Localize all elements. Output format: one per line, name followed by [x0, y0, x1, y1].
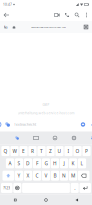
button[interactable]: GIF	[30, 133, 41, 143]
staticText: T	[40, 148, 43, 154]
staticText: S	[17, 160, 20, 167]
button[interactable]: G	[42, 158, 50, 168]
button[interactable]: Recent apps	[7, 194, 23, 205]
staticText: Aa	[3, 24, 7, 30]
button[interactable]: H	[51, 158, 59, 168]
button[interactable]: E	[19, 146, 28, 156]
button[interactable]: U	[55, 146, 64, 156]
button[interactable]: Switch language	[13, 183, 21, 193]
button[interactable]: N	[60, 171, 68, 181]
staticText: D	[26, 160, 30, 167]
button[interactable]: R	[28, 146, 37, 156]
button[interactable]: A	[6, 158, 14, 168]
button[interactable]: Z	[46, 146, 55, 156]
staticText: C	[35, 172, 38, 179]
staticText: 10:47	[3, 2, 12, 7]
button[interactable]: D	[24, 158, 32, 168]
button[interactable]: Home	[38, 194, 54, 205]
staticText: N	[62, 172, 66, 179]
staticText: X	[26, 172, 29, 179]
button[interactable]: Stickers	[11, 133, 22, 143]
button[interactable]: Secure connection	[11, 21, 17, 33]
staticText: Textnachricht	[14, 122, 36, 127]
staticText: M	[71, 172, 75, 179]
staticText: H	[53, 160, 57, 167]
button[interactable]: Add attachment	[0, 118, 3, 131]
staticText: unterhaltung.web-service-host.com	[17, 111, 74, 115]
button[interactable]: B	[51, 171, 59, 181]
button[interactable]: V	[42, 171, 50, 181]
staticText: V	[44, 172, 47, 179]
staticText: B	[53, 172, 56, 179]
button[interactable]: X	[24, 171, 32, 181]
button[interactable]: C	[33, 171, 41, 181]
staticText: Y	[17, 172, 20, 179]
staticText: Q	[3, 148, 7, 154]
button[interactable]: Y	[15, 171, 23, 181]
staticText: E	[22, 148, 25, 154]
button[interactable]: J	[60, 158, 68, 168]
button[interactable]: More options	[82, 9, 91, 21]
button[interactable]: P	[82, 146, 91, 156]
staticText: U	[57, 148, 61, 154]
staticText: G	[44, 160, 47, 167]
staticText: K	[71, 160, 74, 167]
staticText: unterhaltung.web-service-host.com	[31, 25, 66, 29]
button[interactable]: Tabs	[80, 21, 92, 33]
button[interactable]: Call	[62, 9, 72, 21]
button[interactable]: Camera	[78, 118, 88, 131]
staticText: Z	[49, 148, 52, 154]
button[interactable]: Stickers	[3, 118, 12, 131]
button[interactable]: Search	[72, 9, 82, 21]
staticText: A	[8, 160, 11, 167]
button[interactable]: .	[71, 183, 79, 193]
button[interactable]: O	[73, 146, 82, 156]
button[interactable]: W	[10, 146, 19, 156]
staticText: P	[85, 148, 88, 154]
button[interactable]: Back	[69, 194, 85, 205]
button[interactable]: I	[64, 146, 73, 156]
button[interactable]: Voice message	[88, 118, 92, 131]
staticText: I	[67, 148, 69, 154]
staticText: F	[36, 160, 38, 167]
button[interactable]: Emoji	[49, 133, 60, 143]
staticText: L	[80, 160, 83, 167]
button[interactable]: M	[69, 171, 77, 181]
button[interactable]: T	[37, 146, 46, 156]
button[interactable]: Shift	[2, 171, 14, 181]
button[interactable]: ?123	[1, 183, 12, 193]
button[interactable]: Text size	[0, 21, 11, 33]
button[interactable]: Voice input	[87, 133, 92, 143]
button[interactable]: Keyboard settings	[68, 133, 79, 143]
staticText: R	[31, 148, 34, 154]
staticText: W	[12, 148, 16, 154]
button[interactable]: K	[69, 158, 77, 168]
staticText: O	[75, 148, 79, 154]
staticText: .	[74, 185, 75, 191]
button[interactable]: S	[15, 158, 23, 168]
button[interactable]: Q	[1, 146, 10, 156]
button[interactable]: L	[78, 158, 86, 168]
button[interactable]: Enter	[79, 183, 91, 193]
staticText: ?123	[3, 186, 10, 190]
staticText: GMP	[42, 103, 49, 107]
button[interactable]: Video call	[52, 9, 62, 21]
button[interactable]: Back	[0, 9, 13, 21]
button[interactable]: F	[33, 158, 41, 168]
button[interactable]: Backspace	[78, 171, 89, 181]
